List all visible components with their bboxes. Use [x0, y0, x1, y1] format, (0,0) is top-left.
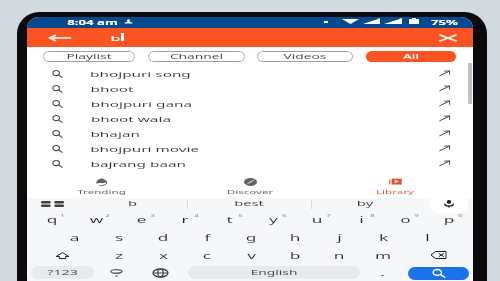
- button[interactable]: h: [273, 228, 317, 246]
- staticText: b: [289, 250, 301, 261]
- staticText: n: [333, 250, 345, 261]
- button[interactable]: g: [229, 228, 273, 246]
- button[interactable]: Channel: [148, 51, 245, 62]
- button[interactable]: o: [383, 210, 427, 228]
- button[interactable]: p: [427, 210, 471, 228]
- staticText: j: [336, 232, 343, 243]
- button[interactable]: Back: [45, 28, 75, 47]
- button[interactable]: t: [207, 210, 251, 228]
- button[interactable]: x: [141, 246, 185, 264]
- button[interactable]: w: [74, 210, 119, 228]
- staticText: y: [268, 214, 279, 225]
- button[interactable]: Playlist: [43, 51, 135, 62]
- staticText: Discover: [226, 188, 274, 195]
- staticText: d: [157, 232, 169, 243]
- staticText: s: [115, 232, 123, 243]
- staticText: 5: [238, 213, 243, 219]
- button[interactable]: d: [141, 228, 185, 246]
- button[interactable]: b: [76, 198, 188, 209]
- staticText: p: [443, 214, 455, 225]
- button[interactable]: by: [311, 198, 419, 209]
- staticText: o: [400, 214, 411, 225]
- staticText: English: [250, 268, 298, 277]
- staticText: k: [378, 232, 389, 243]
- button[interactable]: q: [29, 210, 74, 228]
- button[interactable]: Videos: [257, 51, 353, 62]
- button[interactable]: Change language: [145, 264, 175, 281]
- staticText: All: [402, 52, 420, 61]
- button[interactable]: Discover: [206, 173, 294, 198]
- staticText: bhajan: [90, 129, 140, 139]
- staticText: 6: [282, 213, 287, 219]
- button[interactable]: i: [339, 210, 383, 228]
- button[interactable]: m: [361, 246, 405, 264]
- button[interactable]: j: [317, 228, 361, 246]
- staticText: 8:04 am: [66, 18, 119, 27]
- button[interactable]: a: [52, 228, 97, 246]
- button[interactable]: bhojpuri gana: [27, 96, 473, 111]
- staticText: Channel: [170, 52, 223, 61]
- staticText: Library: [376, 188, 414, 195]
- staticText: g: [245, 232, 257, 243]
- staticText: z: [115, 250, 123, 261]
- button[interactable]: ?123: [31, 266, 94, 279]
- button[interactable]: Voice input: [429, 195, 468, 213]
- staticText: 3: [150, 213, 155, 219]
- button[interactable]: e: [119, 210, 163, 228]
- button[interactable]: bhoot wala: [27, 111, 473, 126]
- staticText: .: [379, 267, 386, 278]
- button[interactable]: bhojpuri movie: [27, 141, 473, 156]
- button[interactable]: Search: [408, 267, 469, 280]
- button[interactable]: Emoji: [101, 264, 131, 281]
- staticText: Videos: [283, 52, 326, 61]
- button[interactable]: Trending: [57, 173, 145, 198]
- staticText: by: [356, 199, 374, 208]
- staticText: w: [89, 214, 104, 225]
- button[interactable]: English: [188, 266, 360, 279]
- button[interactable]: r: [163, 210, 207, 228]
- staticText: f: [204, 232, 211, 243]
- button[interactable]: k: [361, 228, 405, 246]
- button[interactable]: Clear search: [433, 28, 462, 47]
- button[interactable]: s: [97, 228, 141, 246]
- button[interactable]: u: [295, 210, 339, 228]
- button[interactable]: best: [187, 198, 311, 209]
- staticText: 2: [105, 213, 110, 219]
- button[interactable]: bajrang baan: [27, 156, 473, 171]
- button[interactable]: l: [405, 228, 449, 246]
- staticText: 4: [194, 213, 199, 219]
- button[interactable]: Backspace: [405, 246, 471, 264]
- staticText: e: [136, 214, 147, 225]
- button[interactable]: z: [96, 246, 141, 264]
- staticText: m: [375, 250, 391, 261]
- staticText: b: [110, 33, 121, 43]
- button[interactable]: c: [185, 246, 229, 264]
- staticText: h: [289, 232, 301, 243]
- staticText: a: [69, 232, 80, 243]
- staticText: u: [311, 214, 323, 225]
- staticText: best: [234, 199, 264, 208]
- staticText: c: [203, 250, 211, 261]
- button[interactable]: v: [229, 246, 273, 264]
- staticText: v: [246, 250, 257, 261]
- staticText: 8: [370, 213, 375, 219]
- button[interactable]: Shift: [29, 246, 96, 264]
- button[interactable]: .: [367, 264, 397, 281]
- staticText: b: [127, 199, 138, 208]
- staticText: x: [158, 250, 169, 261]
- staticText: t: [226, 214, 233, 225]
- button[interactable]: bhajan: [27, 126, 473, 141]
- button[interactable]: Clipboard: [36, 198, 69, 209]
- staticText: l: [424, 232, 431, 243]
- button[interactable]: bhoot: [27, 81, 473, 96]
- button[interactable]: Library: [351, 173, 439, 198]
- button[interactable]: All: [366, 51, 456, 62]
- button[interactable]: b: [273, 246, 317, 264]
- button[interactable]: n: [317, 246, 361, 264]
- staticText: i: [358, 214, 365, 225]
- staticText: bhojpuri movie: [90, 144, 199, 154]
- staticText: 1: [60, 213, 65, 219]
- button[interactable]: y: [251, 210, 295, 228]
- button[interactable]: bhojpuri song: [27, 66, 473, 81]
- button[interactable]: f: [185, 228, 229, 246]
